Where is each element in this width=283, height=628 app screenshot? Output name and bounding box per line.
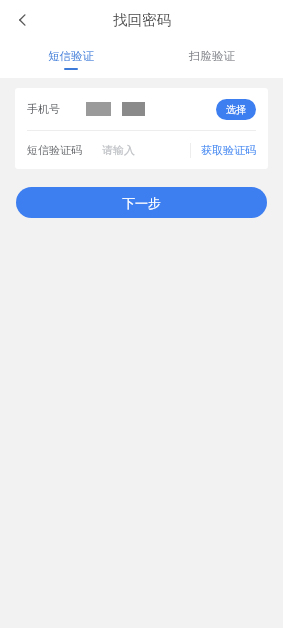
staticText: 短信验证 — [48, 49, 94, 63]
button[interactable]: 获取验证码 — [191, 143, 256, 157]
staticText: 选择 — [226, 103, 246, 116]
staticText: 获取验证码 — [201, 143, 256, 157]
staticText: 请输入 — [102, 143, 135, 157]
staticText: 找回密码 — [113, 11, 171, 29]
button[interactable]: 扫脸验证 — [141, 40, 283, 78]
button[interactable]: 选择 — [216, 99, 256, 120]
staticText: 下一步 — [122, 195, 161, 211]
button[interactable]: 手机号 — [15, 88, 268, 130]
button[interactable]: Back — [6, 3, 40, 37]
staticText: 短信验证码 — [27, 143, 82, 157]
button[interactable]: 下一步 — [16, 187, 267, 218]
staticText: 手机号 — [27, 102, 60, 116]
staticText: 扫脸验证 — [189, 49, 235, 63]
button[interactable]: 短信验证码 — [15, 131, 268, 169]
button[interactable]: 短信验证 — [0, 40, 141, 78]
